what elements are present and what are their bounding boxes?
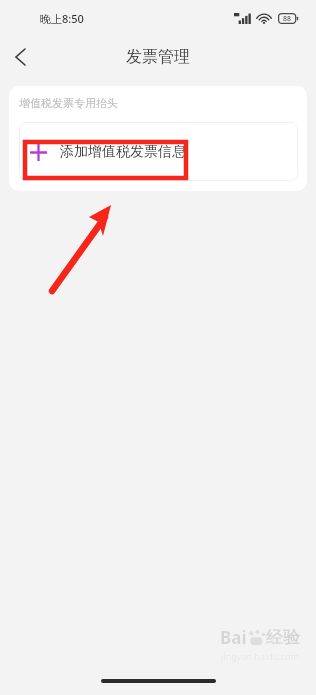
staticText: 晚上8:50	[40, 11, 84, 26]
staticText: 88	[283, 14, 292, 24]
staticText: 发票管理	[126, 47, 190, 67]
button[interactable]: Back	[0, 36, 40, 78]
staticText: Bai	[220, 626, 247, 649]
button[interactable]: 添加增值税发票信息	[19, 122, 298, 181]
staticText: 经验	[266, 627, 300, 648]
staticText: 增值税发票专用抬头	[19, 96, 118, 110]
staticText: 添加增值税发票信息	[60, 143, 186, 161]
